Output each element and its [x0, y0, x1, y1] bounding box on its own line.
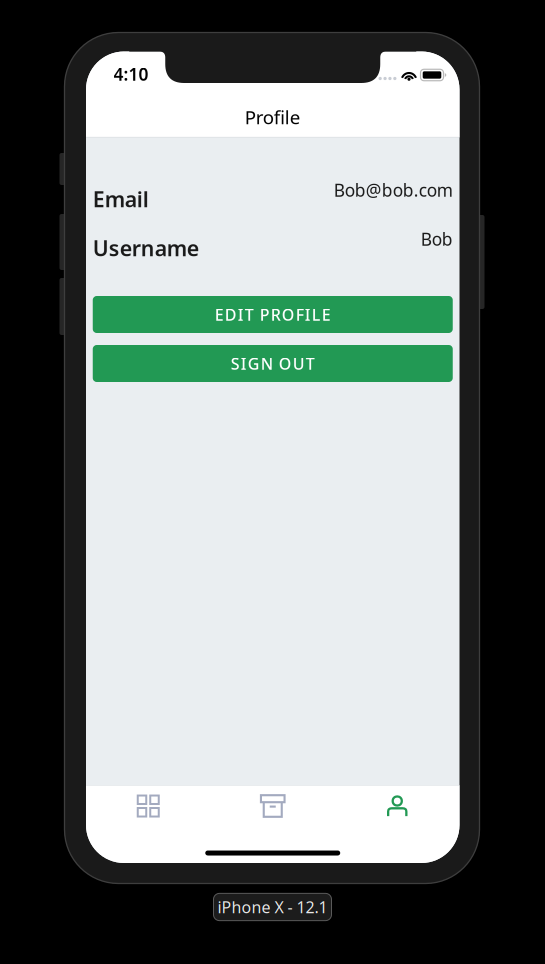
- staticText: Profile: [245, 105, 301, 129]
- button[interactable]: Dashboard: [86, 781, 210, 831]
- staticText: iPhone X - 12.1: [217, 896, 327, 918]
- button[interactable]: SIGN OUT: [93, 345, 453, 382]
- staticText: Email: [93, 185, 149, 213]
- button[interactable]: Archive: [210, 781, 335, 831]
- staticText: 4:10: [113, 62, 148, 85]
- staticText: EDIT PROFILE: [215, 304, 331, 325]
- staticText: Bob: [421, 227, 453, 250]
- button[interactable]: Profile: [335, 781, 459, 831]
- staticText: SIGN OUT: [231, 353, 315, 374]
- button[interactable]: EDIT PROFILE: [93, 296, 453, 333]
- staticText: Username: [93, 234, 199, 262]
- staticText: Bob@bob.com: [334, 178, 453, 201]
